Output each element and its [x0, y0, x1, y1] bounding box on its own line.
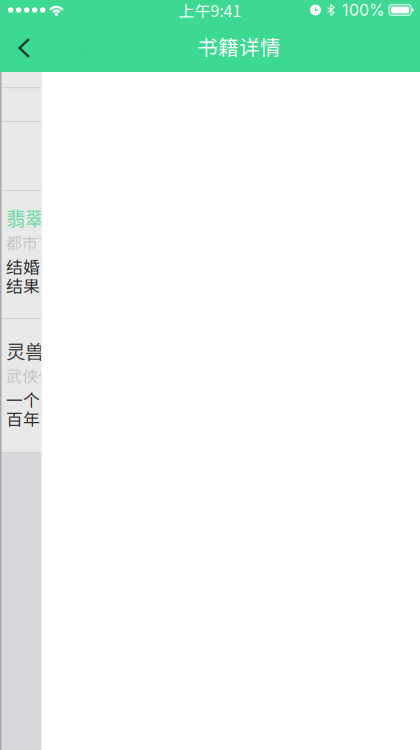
- button[interactable]: 返回: [0, 20, 42, 72]
- staticText: 灵兽传说: [6, 336, 82, 364]
- staticText: 都市言情: [6, 231, 70, 254]
- staticText: 武侠仙侠: [6, 364, 70, 387]
- staticText: 100%: [342, 0, 385, 20]
- staticText: 一个从小被: [6, 387, 91, 412]
- staticText: 翡翠之心: [6, 203, 82, 231]
- staticText: 结婚前夕，: [6, 254, 91, 278]
- staticText: 百年前的古: [6, 406, 91, 431]
- staticText: 上午9:41: [178, 0, 241, 22]
- staticText: 书籍详情: [197, 31, 281, 61]
- staticText: 结果却在婚: [6, 273, 91, 297]
- button[interactable]: 翡翠之心: [0, 191, 140, 318]
- button[interactable]: 灵兽传说: [0, 319, 140, 452]
